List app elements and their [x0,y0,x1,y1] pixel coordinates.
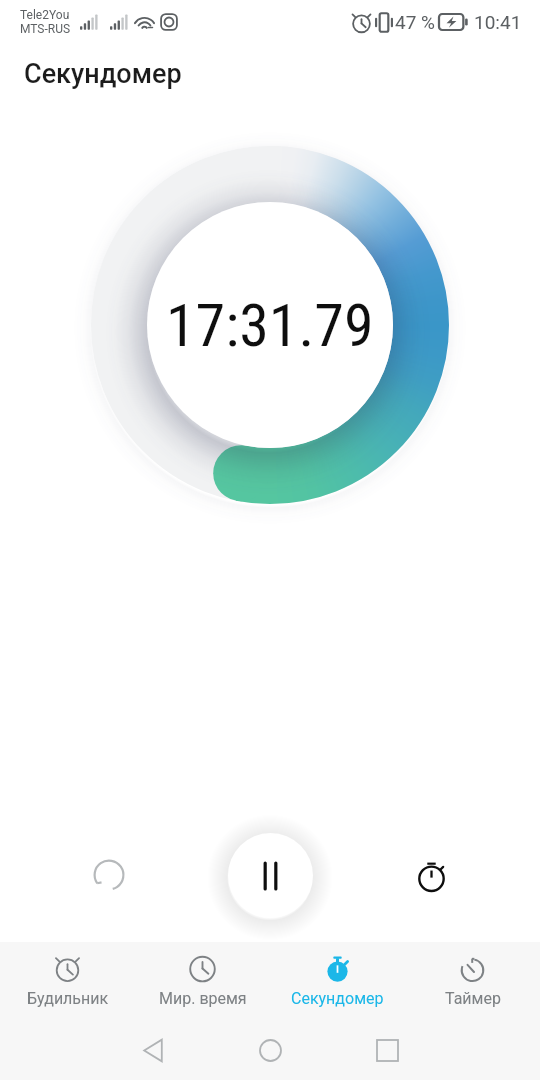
staticText: 17:31.79 [166,290,374,360]
staticText: 47 % [395,11,435,33]
staticText: Tele2You [20,8,70,22]
button[interactable]: Назад [130,1027,176,1073]
button[interactable]: Пауза [228,833,313,918]
button[interactable]: Секундомер [270,942,405,1020]
staticText: Секундомер [24,58,182,90]
button[interactable]: Мир. время [135,942,270,1020]
button[interactable]: Домой [247,1027,293,1073]
button[interactable]: Сброс [85,851,133,899]
button[interactable]: Будильник [0,942,135,1020]
button[interactable]: Таймер [405,942,540,1020]
staticText: Секундомер [291,989,384,1008]
staticText: 10:41 [474,11,522,33]
staticText: Таймер [445,989,501,1008]
staticText: MTS-RUS [20,22,71,36]
button[interactable]: Обзор [364,1027,410,1073]
staticText: Будильник [27,989,109,1008]
button[interactable]: Круг [407,851,455,899]
staticText: Мир. время [159,989,247,1008]
